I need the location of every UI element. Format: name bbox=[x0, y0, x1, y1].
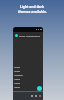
staticText: themes available. bbox=[18, 9, 47, 13]
staticText: Large bbox=[14, 78, 20, 81]
staticText: Small bbox=[14, 70, 20, 73]
staticText: Small bbox=[14, 66, 20, 69]
staticText: Mock Transactions bbox=[19, 34, 40, 37]
staticText: Large bbox=[14, 82, 20, 85]
staticText: Huge bbox=[14, 86, 20, 89]
staticText: Light and dark bbox=[20, 4, 44, 8]
button[interactable]: Add bbox=[37, 86, 42, 91]
staticText: Medium bbox=[14, 74, 23, 77]
